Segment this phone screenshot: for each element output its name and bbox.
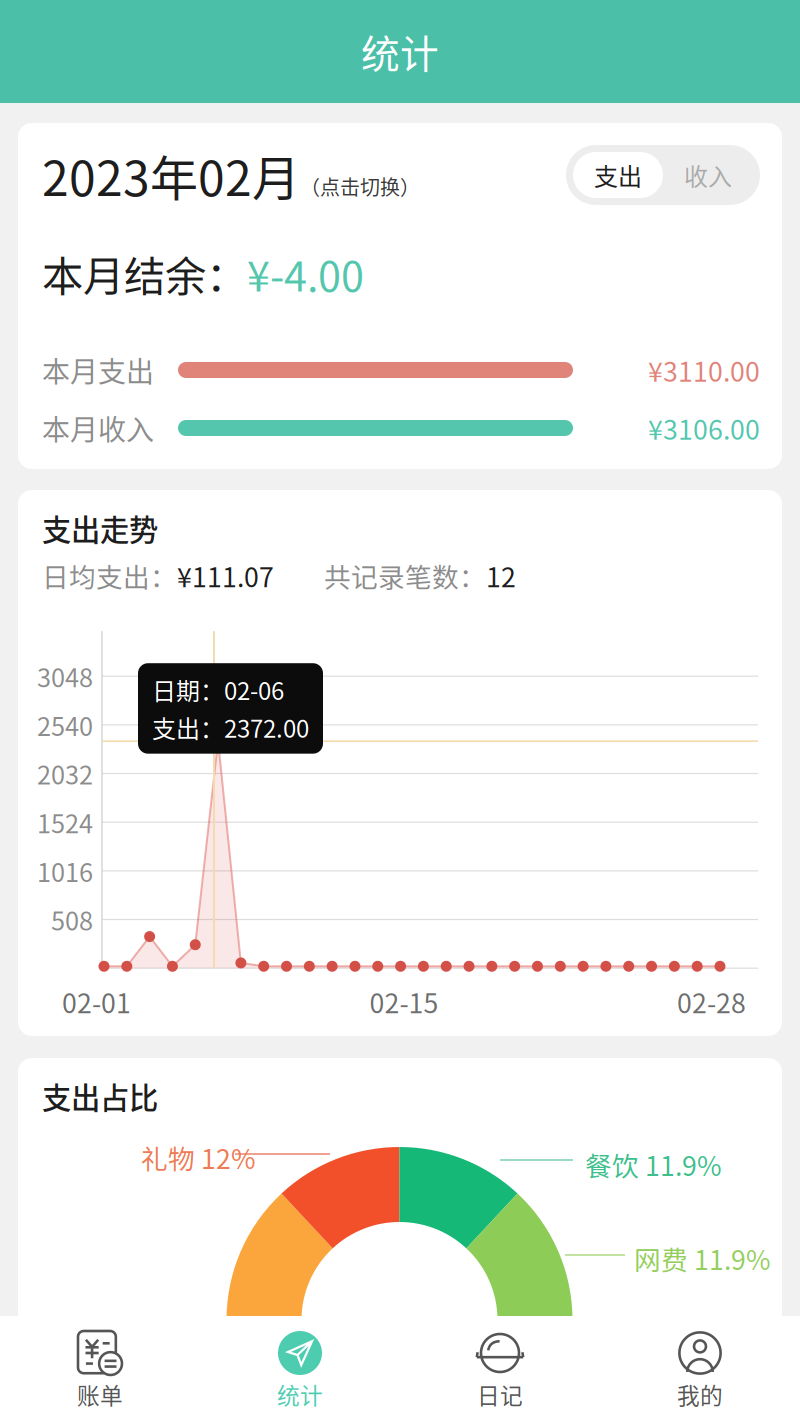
staticText: 1524 <box>37 804 93 841</box>
staticText: 本月收入 <box>42 408 154 448</box>
staticText: 支出占比 <box>42 1075 158 1117</box>
staticText: 02-28 <box>677 982 746 1021</box>
staticText: 统计 <box>361 23 439 79</box>
staticText: ¥-4.00 <box>247 244 364 303</box>
staticText: 508 <box>51 901 93 938</box>
staticText: 共记录笔数： <box>324 556 486 595</box>
staticText: 02-15 <box>369 982 438 1021</box>
staticText: 本月支出 <box>42 350 154 390</box>
staticText: 3048 <box>37 658 93 695</box>
staticText: 餐饮 11.9% <box>585 1145 722 1184</box>
staticText: 2023年02月 <box>42 140 300 210</box>
button[interactable]: 日记 <box>400 1316 600 1421</box>
staticText: 礼物 12% <box>141 1138 256 1177</box>
button[interactable]: 2023年02月 <box>42 140 420 210</box>
staticText: 我的 <box>677 1378 723 1411</box>
staticText: 日期： <box>152 672 224 707</box>
button[interactable]: 账单 <box>0 1316 200 1421</box>
button[interactable]: 统计 <box>200 1316 400 1421</box>
staticText: 02-01 <box>62 982 131 1021</box>
staticText: 1016 <box>37 852 93 889</box>
staticText: 日均支出： <box>42 556 177 595</box>
button[interactable]: 支出 <box>573 152 663 198</box>
staticText: 支出： <box>152 710 224 745</box>
staticText: （点击切换） <box>300 172 420 201</box>
staticText: 统计 <box>277 1378 323 1411</box>
staticText: ¥111.07 <box>177 556 274 595</box>
staticText: 02-06 <box>224 672 284 707</box>
button[interactable]: 我的 <box>600 1316 800 1421</box>
staticText: 12 <box>486 556 516 595</box>
staticText: 网费 11.9% <box>634 1239 771 1278</box>
staticText: 2372.00 <box>224 710 309 745</box>
staticText: 2032 <box>37 755 93 792</box>
staticText: 日记 <box>477 1378 523 1411</box>
staticText: 支出走势 <box>42 507 158 549</box>
staticText: 本月结余： <box>42 244 247 303</box>
staticText: 2540 <box>37 706 93 743</box>
button[interactable]: 收入 <box>663 152 753 198</box>
staticText: 账单 <box>77 1378 123 1411</box>
staticText: 收入 <box>684 158 732 192</box>
staticText: ¥3110.00 <box>648 351 760 389</box>
staticText: ¥3106.00 <box>648 409 760 447</box>
staticText: 支出 <box>594 158 642 192</box>
